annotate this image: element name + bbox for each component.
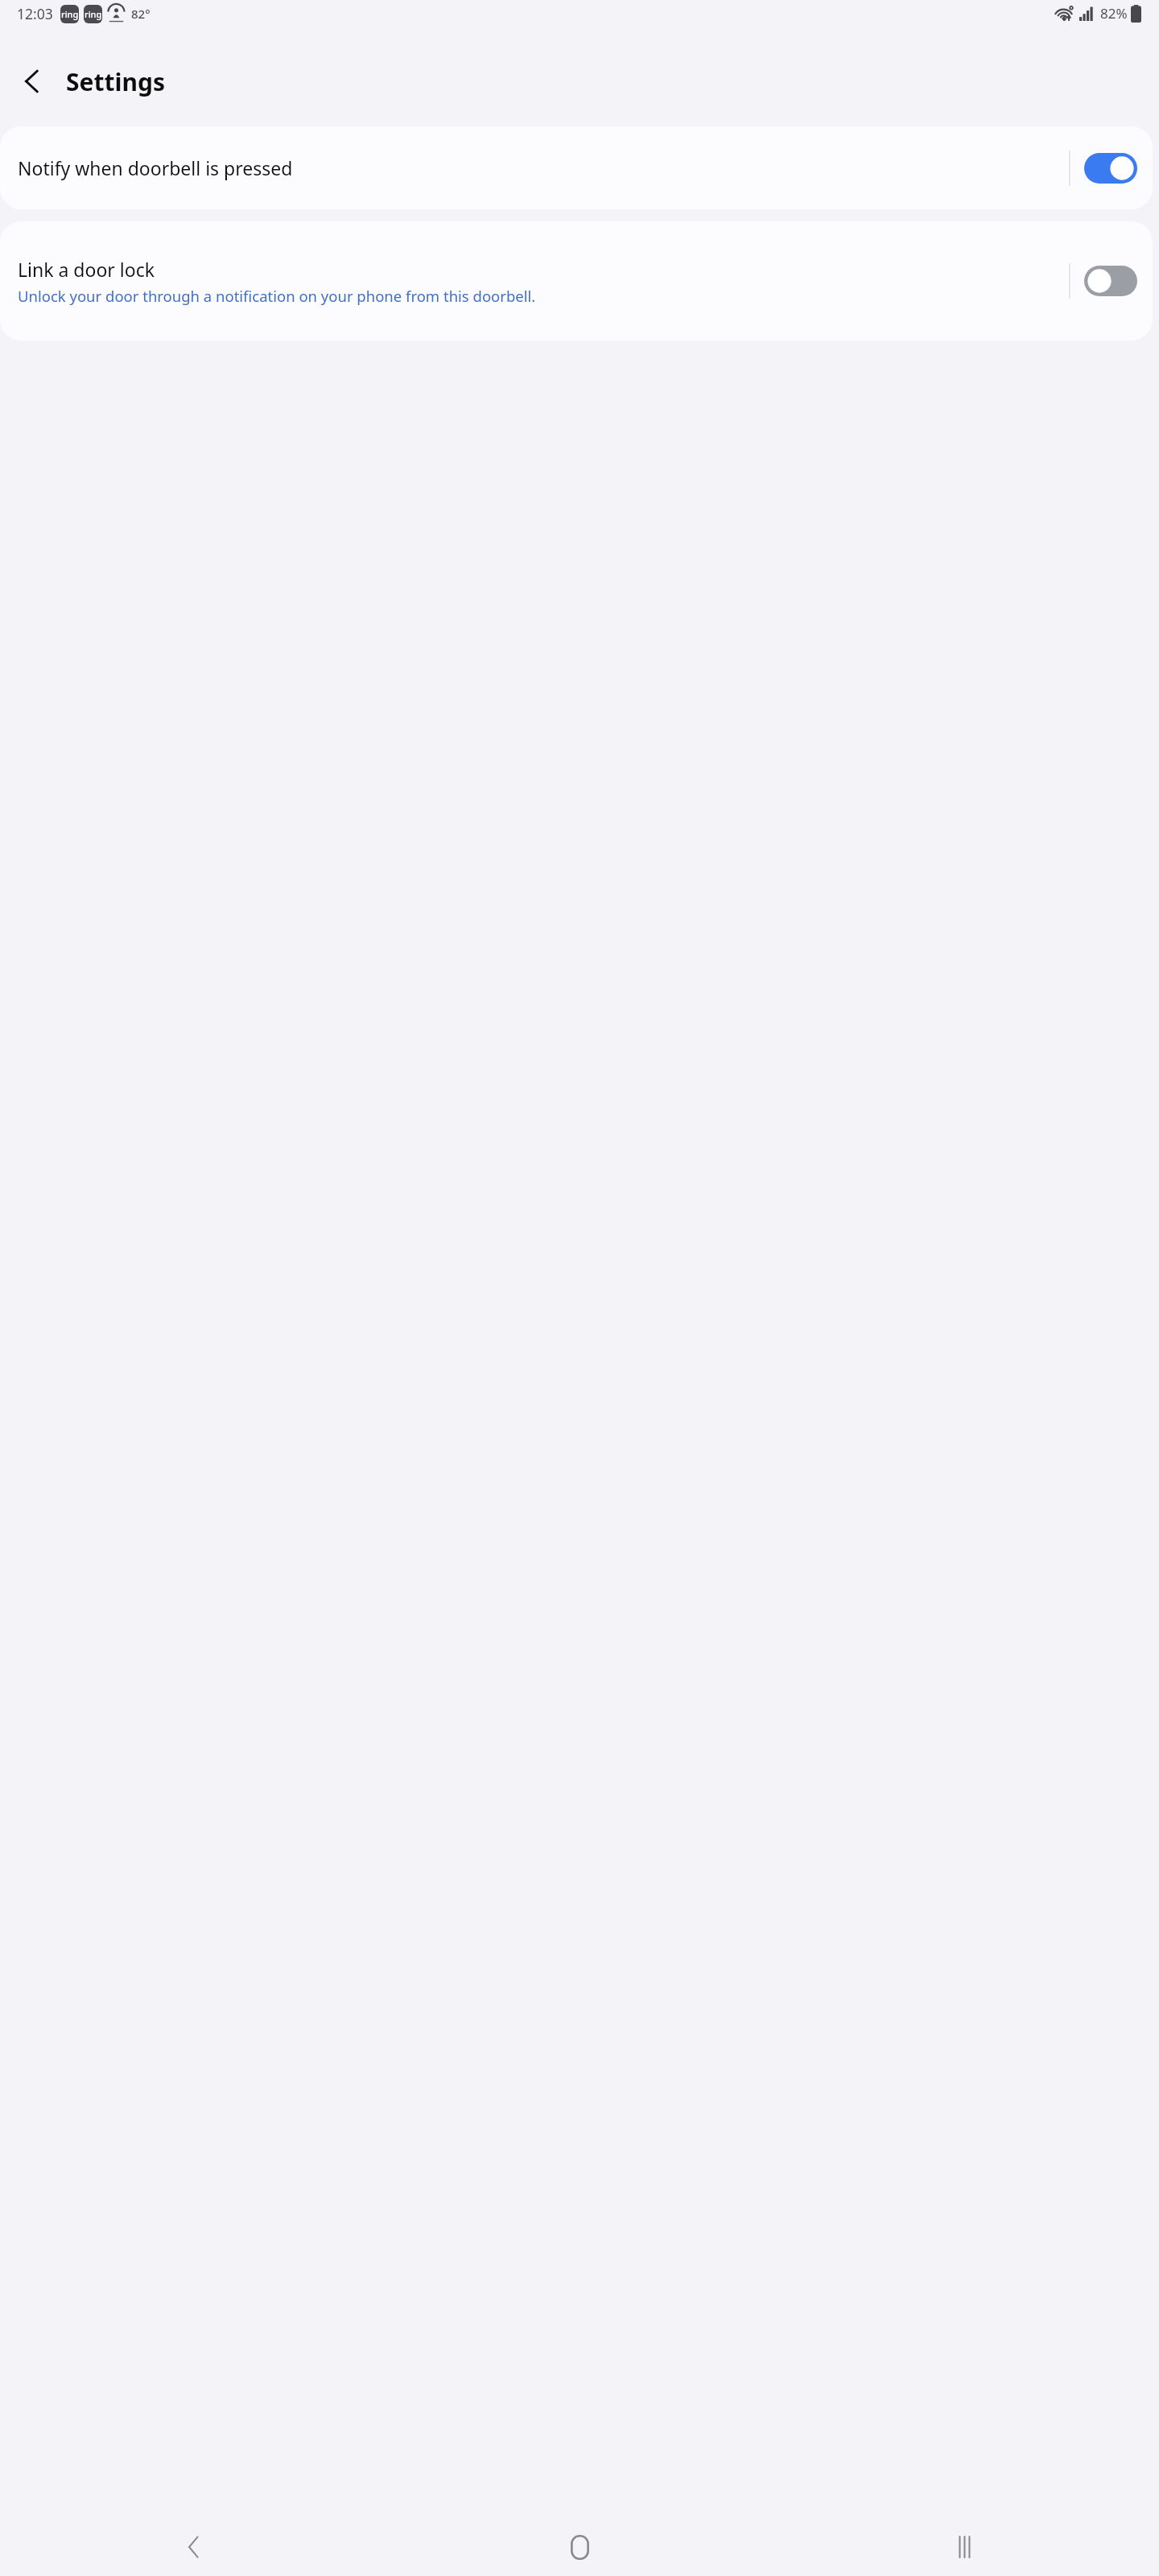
staticText: Unlock your door through a notification … xyxy=(18,286,536,306)
button[interactable]: Back xyxy=(10,59,55,104)
button[interactable]: Link a door lock toggle xyxy=(1083,257,1138,305)
staticText: ring xyxy=(61,8,79,20)
button[interactable]: Home xyxy=(386,2518,773,2576)
button[interactable]: Link a door lock xyxy=(0,221,1153,341)
button[interactable]: Recent apps xyxy=(773,2518,1159,2576)
staticText: ring xyxy=(85,8,102,20)
staticText: Notify when doorbell is pressed xyxy=(18,155,1059,180)
staticText: Link a door lock xyxy=(18,257,155,282)
button[interactable]: Back xyxy=(0,2518,386,2576)
staticText: 12:03 xyxy=(17,4,53,23)
button[interactable]: Notify when doorbell is pressed toggle xyxy=(1083,144,1138,192)
staticText: 82% xyxy=(1100,4,1128,23)
staticText: 82° xyxy=(131,6,151,22)
button[interactable]: Notify when doorbell is pressed xyxy=(0,126,1153,209)
staticText: Settings xyxy=(66,65,165,98)
